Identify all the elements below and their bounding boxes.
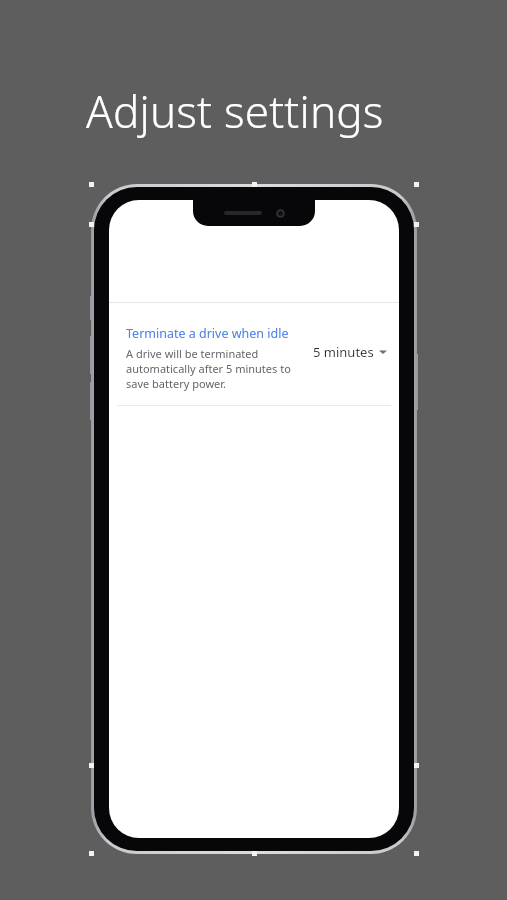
other: Open dropdown: [379, 349, 387, 355]
staticText: Adjust settings: [86, 81, 384, 141]
button[interactable]: Terminate a drive when idle: [109, 303, 399, 405]
button[interactable]: 5 minutes: [313, 343, 387, 361]
staticText: Terminate a drive when idle: [126, 325, 289, 342]
staticText: A drive will be terminated automatically…: [126, 346, 307, 391]
staticText: 5 minutes: [313, 343, 374, 361]
